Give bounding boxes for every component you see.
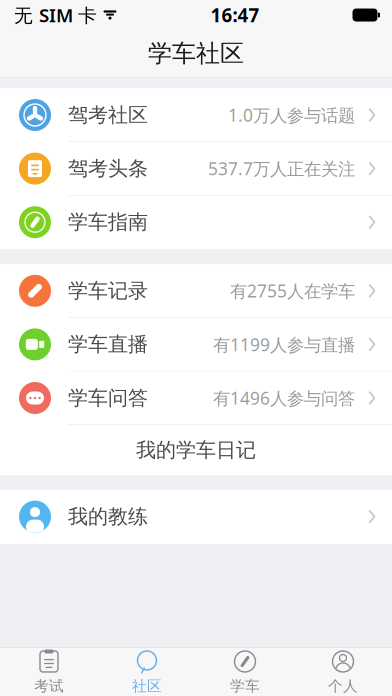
button[interactable]: 个人 bbox=[294, 648, 392, 696]
button[interactable]: 我的教练 bbox=[0, 490, 392, 544]
staticText: 1.0万人参与话题 bbox=[228, 103, 355, 126]
staticText: 16:47 bbox=[210, 3, 259, 27]
staticText: 个人 bbox=[328, 677, 358, 695]
staticText: 有1199人参与直播 bbox=[213, 333, 355, 356]
staticText: 考试 bbox=[34, 677, 64, 695]
staticText: 驾考头条 bbox=[68, 156, 148, 181]
staticText: 有1496人参与问答 bbox=[213, 386, 355, 409]
staticText: 社区 bbox=[132, 677, 162, 695]
button[interactable]: 考试 bbox=[0, 648, 98, 696]
button[interactable]: 学车问答 bbox=[0, 371, 392, 425]
staticText: 我的教练 bbox=[68, 504, 148, 529]
button[interactable]: 学车 bbox=[196, 648, 294, 696]
staticText: 有2755人在学车 bbox=[230, 279, 355, 302]
button[interactable]: 社区 bbox=[98, 648, 196, 696]
staticText: 537.7万人正在关注 bbox=[208, 157, 355, 180]
staticText: 我的学车日记 bbox=[136, 438, 256, 462]
button[interactable]: 学车记录 bbox=[0, 264, 392, 318]
staticText: 学车问答 bbox=[68, 386, 148, 410]
button[interactable]: 驾考社区 bbox=[0, 88, 392, 142]
staticText: 学车指南 bbox=[68, 210, 148, 234]
button[interactable]: 驾考头条 bbox=[0, 142, 392, 196]
staticText: 学车记录 bbox=[68, 278, 148, 303]
staticText: 学车 bbox=[230, 677, 260, 695]
staticText: 驾考社区 bbox=[68, 103, 148, 127]
button[interactable]: 学车指南 bbox=[0, 196, 392, 249]
staticText: 无 SIM 卡 bbox=[14, 3, 97, 27]
staticText: 学车社区 bbox=[148, 39, 244, 68]
button[interactable]: 学车直播 bbox=[0, 318, 392, 371]
staticText: 学车直播 bbox=[68, 332, 148, 357]
button[interactable]: 我的学车日记 bbox=[0, 425, 392, 475]
